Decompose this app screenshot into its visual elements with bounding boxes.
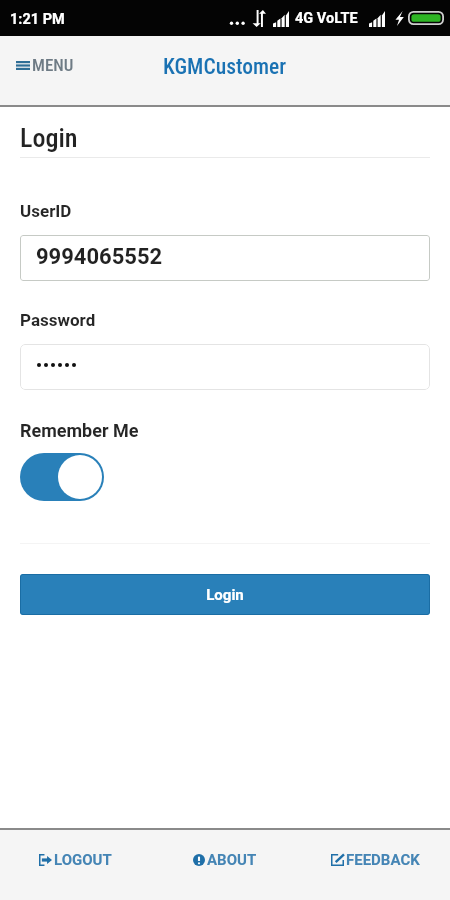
staticText: 4G VoLTE [295,10,358,27]
staticText: ABOUT [207,851,257,869]
staticText: LOGOUT [54,851,112,869]
button[interactable]: FEEDBACK [300,830,450,900]
staticText: 9994065552 [36,244,163,270]
staticText: Login [206,586,244,604]
staticText: UserID [20,201,72,221]
button[interactable]: ABOUT [150,830,300,900]
button[interactable] [20,344,430,390]
button[interactable]: Login [20,574,430,615]
button[interactable]: Menu [8,49,84,93]
staticText: MENU [32,55,74,75]
button[interactable] [20,235,430,281]
staticText: 1:21 PM [10,11,65,28]
staticText: Password [20,310,96,330]
button[interactable]: LOGOUT [0,830,150,900]
button[interactable]: Remember Me toggle [20,453,104,501]
staticText: Remember Me [20,420,139,441]
staticText: FEEDBACK [346,851,420,869]
staticText: Login [20,123,78,153]
staticText: KGMCustomer [163,54,287,79]
other: Menu [16,61,30,70]
